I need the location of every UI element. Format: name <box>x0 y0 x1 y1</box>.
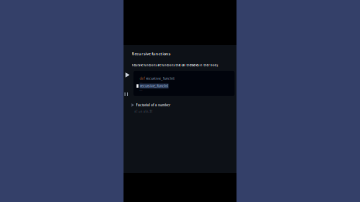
staticText: n! = n x (n-1)! <box>134 110 152 114</box>
staticText: Recursive functions are functions that c… <box>131 63 218 67</box>
staticText: recursive_func(n): <box>146 76 175 81</box>
staticText: def <box>139 76 144 81</box>
staticText: Factorial of a number <box>136 103 170 107</box>
staticText: Recursive functions <box>131 51 170 56</box>
staticText: ... <box>139 80 142 84</box>
staticText: recursive_func(n) <box>140 84 168 88</box>
button[interactable]: Run cell <box>123 71 131 79</box>
staticText: ... <box>139 88 142 92</box>
